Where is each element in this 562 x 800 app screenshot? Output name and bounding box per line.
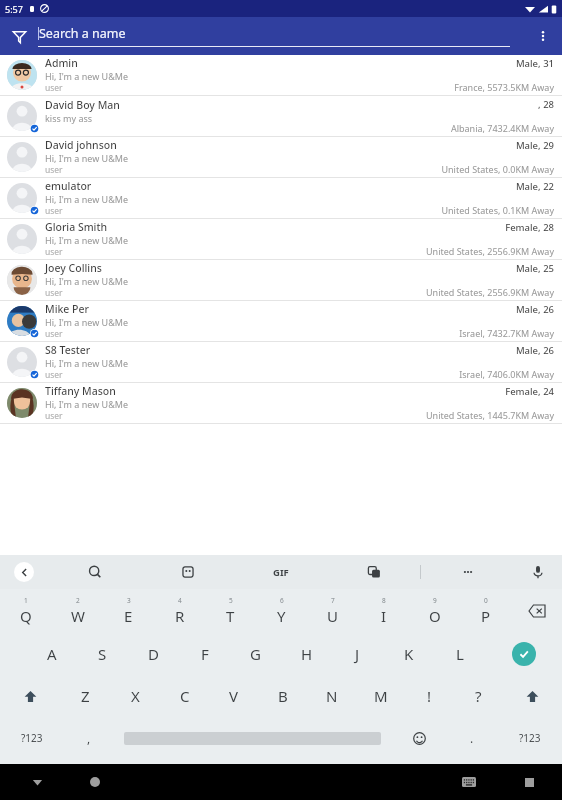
button[interactable]: More xyxy=(421,555,514,589)
button[interactable]: David johnson xyxy=(0,137,562,178)
staticText: , xyxy=(87,730,91,746)
staticText: Q xyxy=(20,606,32,626)
button[interactable]: Voice input xyxy=(514,555,562,589)
staticText: ? xyxy=(475,686,482,706)
button[interactable]: Gloria Smith xyxy=(0,219,562,260)
button[interactable]: D xyxy=(128,633,179,675)
button[interactable]: 8 xyxy=(358,589,409,633)
button[interactable]: J xyxy=(332,633,383,675)
button[interactable]: M xyxy=(356,675,405,717)
staticText: X xyxy=(131,686,140,706)
button[interactable]: Shift xyxy=(0,675,60,717)
button[interactable]: Emoji xyxy=(392,717,447,759)
button[interactable]: 1 xyxy=(0,589,52,633)
staticText: W xyxy=(71,606,85,626)
button[interactable]: X xyxy=(110,675,160,717)
button[interactable]: Tiffany Mason xyxy=(0,383,562,424)
button[interactable]: ?123 xyxy=(0,717,64,759)
staticText: Male, 25 xyxy=(515,262,554,275)
staticText: 5 xyxy=(229,596,233,605)
button[interactable]: C xyxy=(160,675,209,717)
staticText: Israel, 7406.0KM Away xyxy=(459,368,554,380)
button[interactable]: Collapse toolbar xyxy=(0,555,48,589)
button[interactable]: Translate xyxy=(327,555,420,589)
button[interactable]: Mike Per xyxy=(0,301,562,342)
button[interactable]: Enter xyxy=(485,633,562,675)
button[interactable]: David Boy Man xyxy=(0,96,562,137)
staticText: user xyxy=(45,164,63,176)
button[interactable]: 0 xyxy=(460,589,511,633)
staticText: Male, 26 xyxy=(515,303,554,316)
staticText: 9 xyxy=(433,596,437,605)
button[interactable]: ? xyxy=(454,675,503,717)
button[interactable]: B xyxy=(258,675,307,717)
button[interactable]: Z xyxy=(60,675,110,717)
staticText: United States, 0.1KM Away xyxy=(441,204,554,216)
button[interactable]: Space xyxy=(113,717,392,759)
button[interactable]: F xyxy=(179,633,230,675)
staticText: user xyxy=(45,205,63,217)
staticText: kiss my ass xyxy=(45,112,93,124)
staticText: ?123 xyxy=(519,731,541,745)
button[interactable]: N xyxy=(307,675,356,717)
button[interactable]: Backspace xyxy=(511,589,562,633)
staticText: Hi, I'm a new U&Me xyxy=(45,316,128,328)
button[interactable]: V xyxy=(209,675,258,717)
button[interactable]: 7 xyxy=(307,589,358,633)
staticText: user xyxy=(45,369,63,381)
button[interactable]: Filter xyxy=(0,17,38,55)
button[interactable]: 2 xyxy=(52,589,103,633)
button[interactable]: Shift right xyxy=(503,675,562,717)
button[interactable]: 4 xyxy=(154,589,205,633)
staticText: B xyxy=(278,686,288,706)
button[interactable]: S xyxy=(77,633,128,675)
staticText: 6 xyxy=(280,596,284,605)
staticText: Male, 31 xyxy=(515,57,554,70)
staticText: C xyxy=(180,686,190,706)
button[interactable]: K xyxy=(383,633,434,675)
staticText: user xyxy=(45,82,63,94)
button[interactable]: emulator xyxy=(0,178,562,219)
staticText: United States, 2556.9KM Away xyxy=(426,286,554,298)
button[interactable]: 9 xyxy=(409,589,460,633)
button[interactable]: L xyxy=(434,633,485,675)
button[interactable]: Recent apps xyxy=(514,767,544,797)
staticText: Z xyxy=(81,686,90,706)
staticText: user xyxy=(45,410,63,422)
staticText: 2 xyxy=(76,596,80,605)
button[interactable]: Joey Collins xyxy=(0,260,562,301)
staticText: 5:57 xyxy=(5,3,23,15)
button[interactable]: Switch keyboard xyxy=(454,767,484,797)
staticText: G xyxy=(250,644,261,664)
button[interactable]: Admin xyxy=(0,55,562,96)
button[interactable]: Search xyxy=(48,555,141,589)
button[interactable]: GIF xyxy=(234,555,327,589)
button[interactable]: Stickers xyxy=(141,555,234,589)
staticText: T xyxy=(226,606,235,626)
button[interactable]: S8 Tester xyxy=(0,342,562,383)
staticText: Admin xyxy=(45,56,78,70)
button[interactable]: A xyxy=(26,633,77,675)
button[interactable]: More options xyxy=(524,17,562,55)
button[interactable]: 5 xyxy=(205,589,256,633)
staticText: David johnson xyxy=(45,138,117,152)
button[interactable]: Search a name xyxy=(38,17,524,55)
button[interactable]: ?123 xyxy=(497,717,562,759)
button[interactable]: G xyxy=(230,633,281,675)
button[interactable]: , xyxy=(64,717,113,759)
button[interactable]: H xyxy=(281,633,332,675)
staticText: David Boy Man xyxy=(45,98,120,112)
staticText: K xyxy=(404,644,414,664)
staticText: Male, 22 xyxy=(515,180,554,193)
button[interactable]: Hide keyboard xyxy=(22,767,52,797)
staticText: E xyxy=(124,606,133,626)
staticText: Albania, 7432.4KM Away xyxy=(450,122,554,134)
button[interactable]: Home xyxy=(80,767,110,797)
staticText: Israel, 7432.7KM Away xyxy=(459,327,554,339)
button[interactable]: . xyxy=(447,717,497,759)
button[interactable]: ! xyxy=(405,675,454,717)
staticText: , 28 xyxy=(538,98,554,111)
button[interactable]: 6 xyxy=(256,589,307,633)
button[interactable]: 3 xyxy=(103,589,154,633)
staticText: Female, 24 xyxy=(505,385,554,398)
